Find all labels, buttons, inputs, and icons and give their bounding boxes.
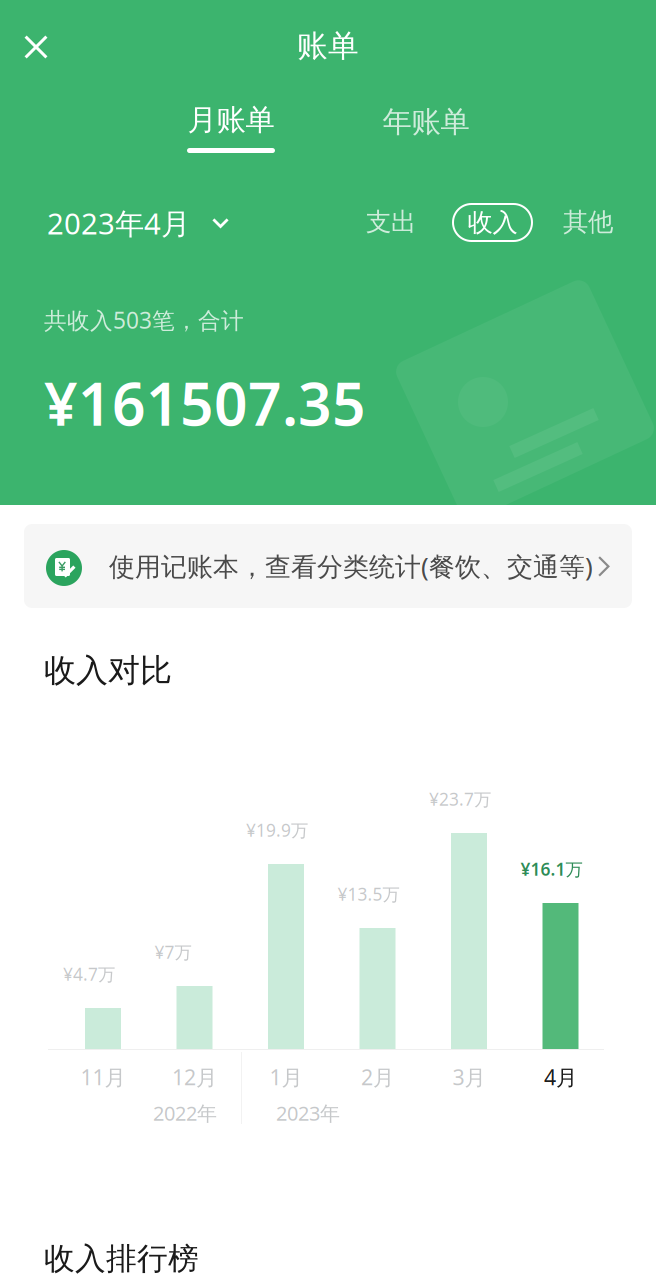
- staticText: ¥16.1万: [520, 857, 582, 880]
- staticText: 使用记账本，查看分类统计(餐饮、交通等): [109, 548, 593, 584]
- staticText: 4月: [544, 1063, 577, 1091]
- staticText: 支出: [366, 206, 416, 237]
- staticText: 共收入503笔，合计: [44, 305, 244, 335]
- staticText: 2023年: [276, 1100, 340, 1126]
- staticText: 其他: [563, 206, 613, 237]
- staticText: ¥4.7万: [63, 962, 115, 985]
- staticText: 1月: [269, 1063, 302, 1091]
- staticText: 2月: [361, 1063, 394, 1091]
- staticText: 3月: [452, 1063, 485, 1091]
- staticText: 12月: [172, 1063, 217, 1091]
- button[interactable]: 使用记账本，查看分类统计(餐饮、交通等): [24, 524, 632, 608]
- staticText: 2022年: [153, 1100, 217, 1126]
- button[interactable]: 收入: [453, 204, 532, 241]
- button[interactable]: 2023年4月: [43, 200, 233, 246]
- staticText: 收入对比: [44, 651, 172, 690]
- button[interactable]: 月账单: [157, 102, 305, 160]
- staticText: 账单: [297, 27, 359, 65]
- button[interactable]: 年账单: [352, 102, 500, 142]
- button[interactable]: 其他: [553, 203, 623, 241]
- staticText: 收入: [467, 207, 517, 238]
- button[interactable]: 支出: [356, 203, 426, 241]
- staticText: ¥19.9万: [246, 818, 308, 841]
- staticText: ¥13.5万: [337, 882, 399, 905]
- staticText: 11月: [80, 1063, 125, 1091]
- staticText: 月账单: [187, 102, 274, 138]
- staticText: ¥161507.35: [44, 364, 366, 442]
- staticText: 收入排行榜: [44, 1240, 199, 1278]
- staticText: 年账单: [382, 104, 469, 140]
- staticText: ¥7万: [154, 940, 191, 963]
- staticText: 2023年4月: [47, 203, 190, 242]
- staticText: ¥23.7万: [429, 787, 491, 810]
- button[interactable]: Close: [5, 16, 67, 78]
